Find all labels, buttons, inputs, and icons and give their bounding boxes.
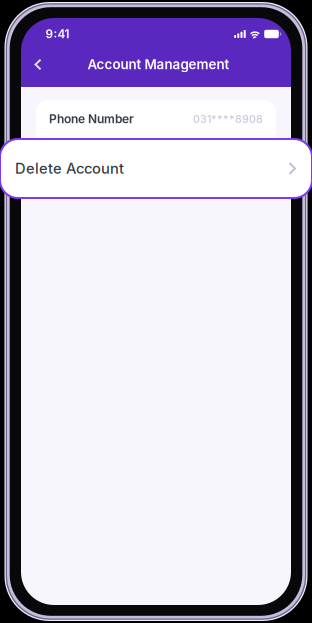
staticText: Account Management — [87, 56, 229, 72]
button[interactable]: Phone Number — [36, 100, 276, 138]
staticText: Phone Number — [49, 112, 134, 126]
button[interactable]: Delete Account — [0, 139, 312, 198]
staticText: 9:41 — [45, 27, 69, 41]
staticText: Delete Account — [15, 160, 124, 177]
staticText: 031****8908 — [193, 112, 263, 125]
button[interactable]: Back — [26, 49, 50, 79]
